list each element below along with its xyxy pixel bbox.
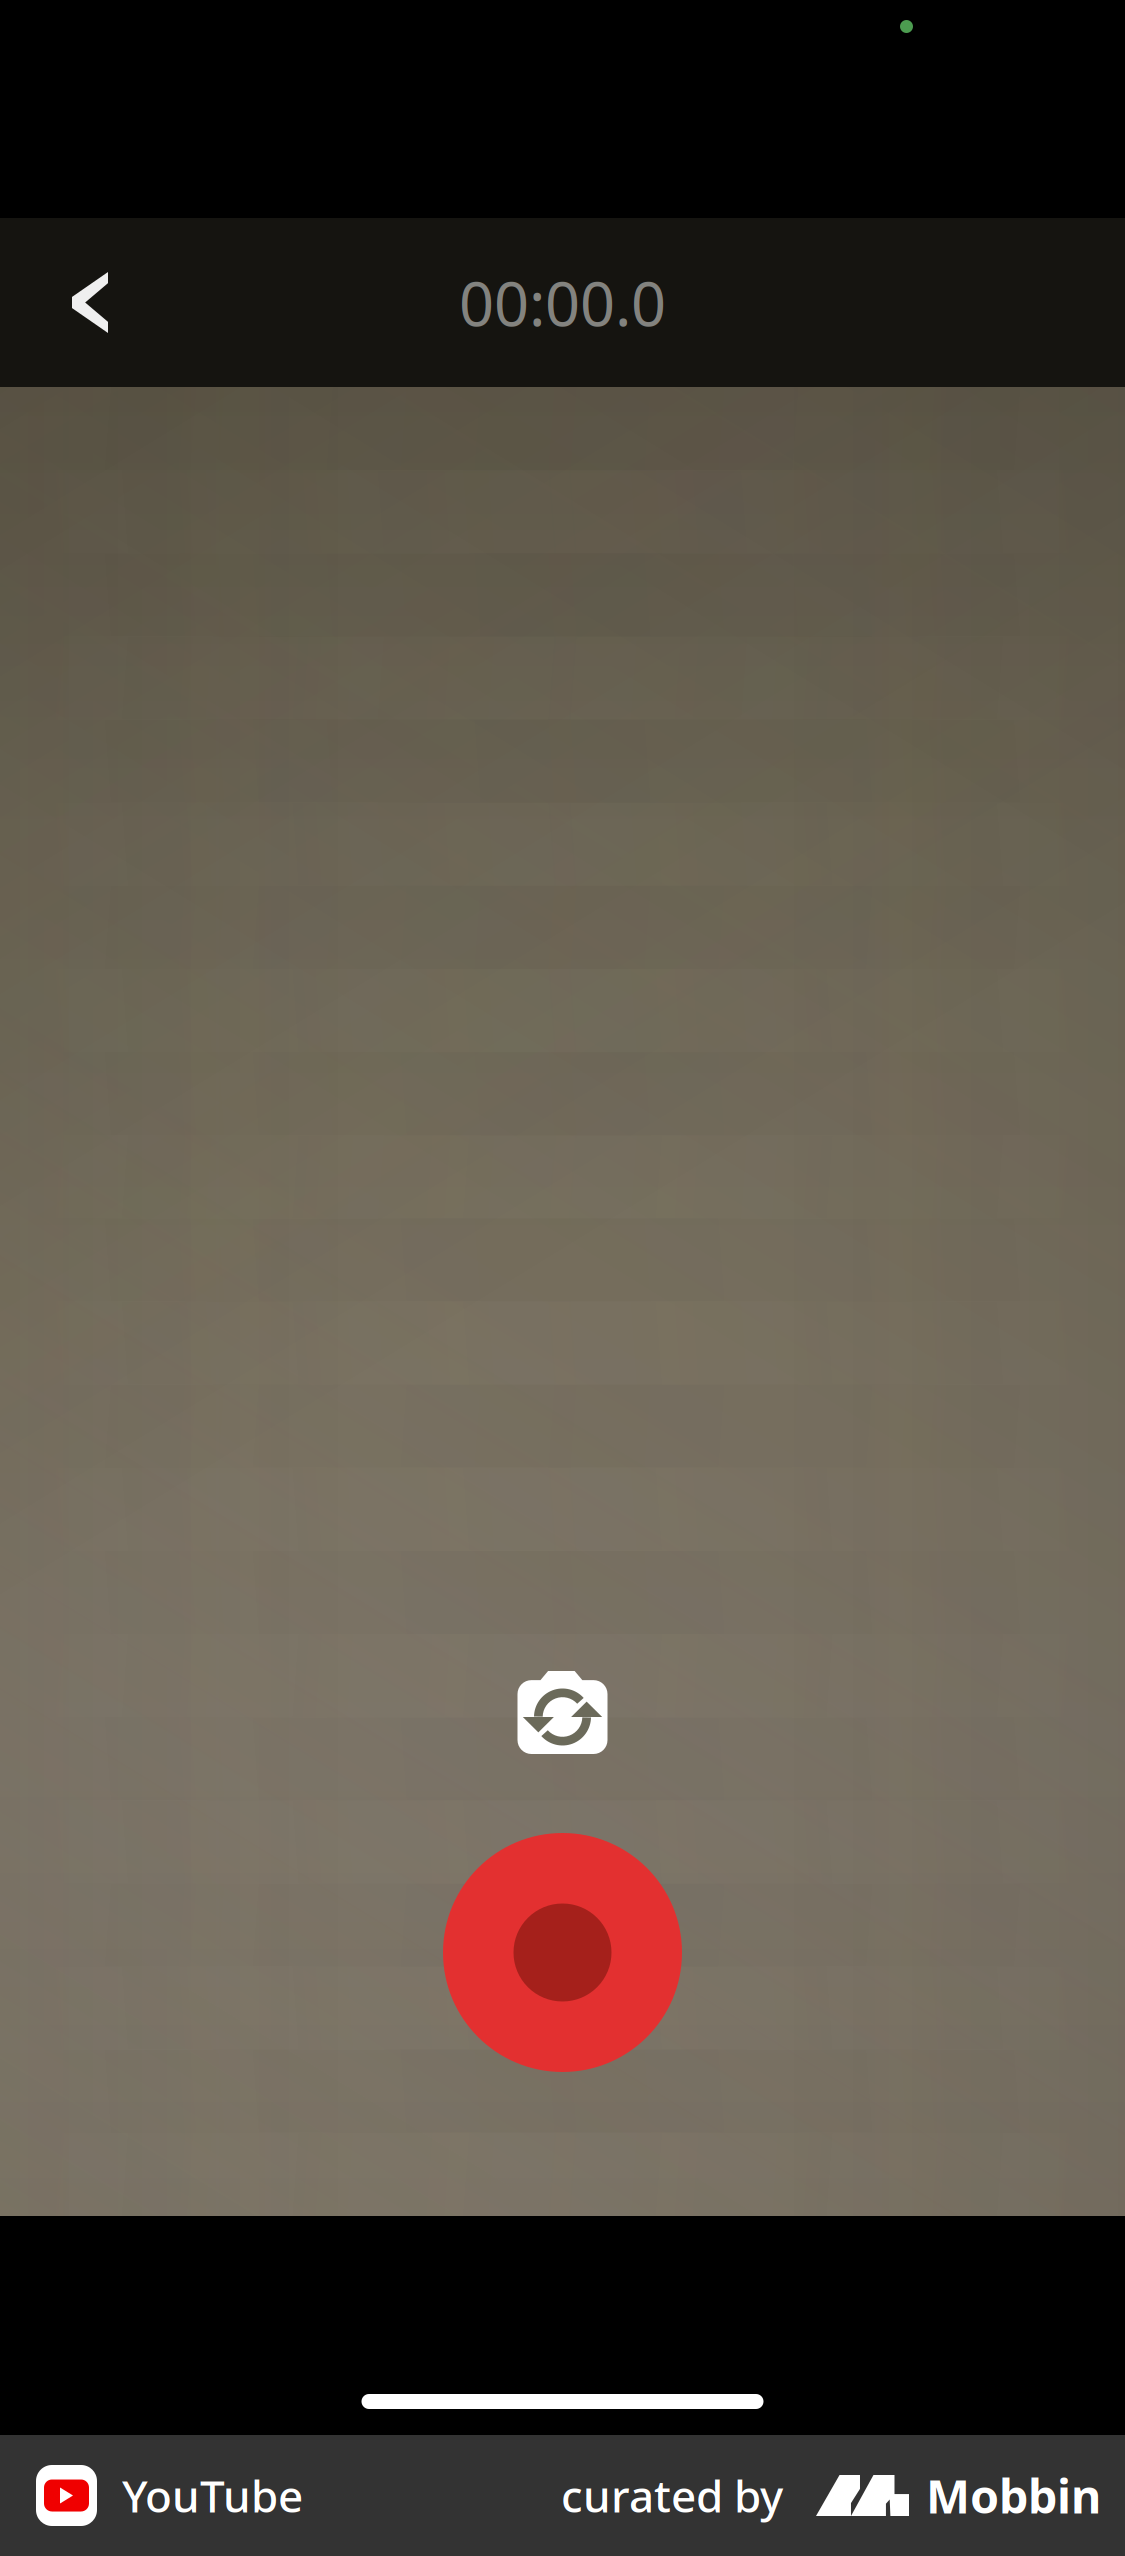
staticText: 00:00.0 bbox=[459, 261, 666, 344]
staticText: YouTube bbox=[122, 2465, 303, 2525]
button[interactable]: Switch camera bbox=[507, 1661, 617, 1764]
staticText: Mobbin bbox=[926, 2464, 1101, 2527]
button[interactable]: Record bbox=[443, 1833, 682, 2072]
button[interactable]: Back bbox=[0, 218, 180, 387]
staticText: curated by bbox=[561, 2465, 783, 2525]
